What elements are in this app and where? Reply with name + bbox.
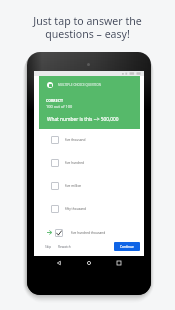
button[interactable]: five thousand	[34, 128, 144, 151]
button[interactable]: five million	[34, 174, 144, 197]
staticText: 100 out of 100	[46, 104, 73, 109]
staticText: Continue	[120, 245, 134, 249]
button[interactable]: fifty thousand	[34, 197, 144, 220]
button[interactable]: Home	[82, 256, 96, 270]
staticText: five hundred thousand	[71, 231, 106, 235]
staticText: fifty thousand	[65, 207, 86, 211]
staticText: five hundred	[65, 161, 85, 165]
staticText: Just tap to answer the questions – easy!	[33, 14, 142, 41]
staticText: five million	[65, 184, 82, 188]
button[interactable]: Back	[52, 256, 66, 270]
button[interactable]: five hundred	[34, 151, 144, 174]
button[interactable]: Rewatch	[56, 243, 73, 251]
staticText: CORRECT!	[46, 98, 64, 103]
button[interactable]: Continue	[114, 242, 140, 251]
staticText: MULTIPLE CHOICE QUESTION	[58, 83, 102, 87]
button[interactable]: five hundred thousand	[34, 221, 144, 244]
button[interactable]: Recent apps	[112, 256, 126, 270]
staticText: What number is this --> 500,000	[47, 116, 119, 123]
button[interactable]: Skip	[43, 243, 54, 251]
staticText: five thousand	[65, 138, 86, 142]
